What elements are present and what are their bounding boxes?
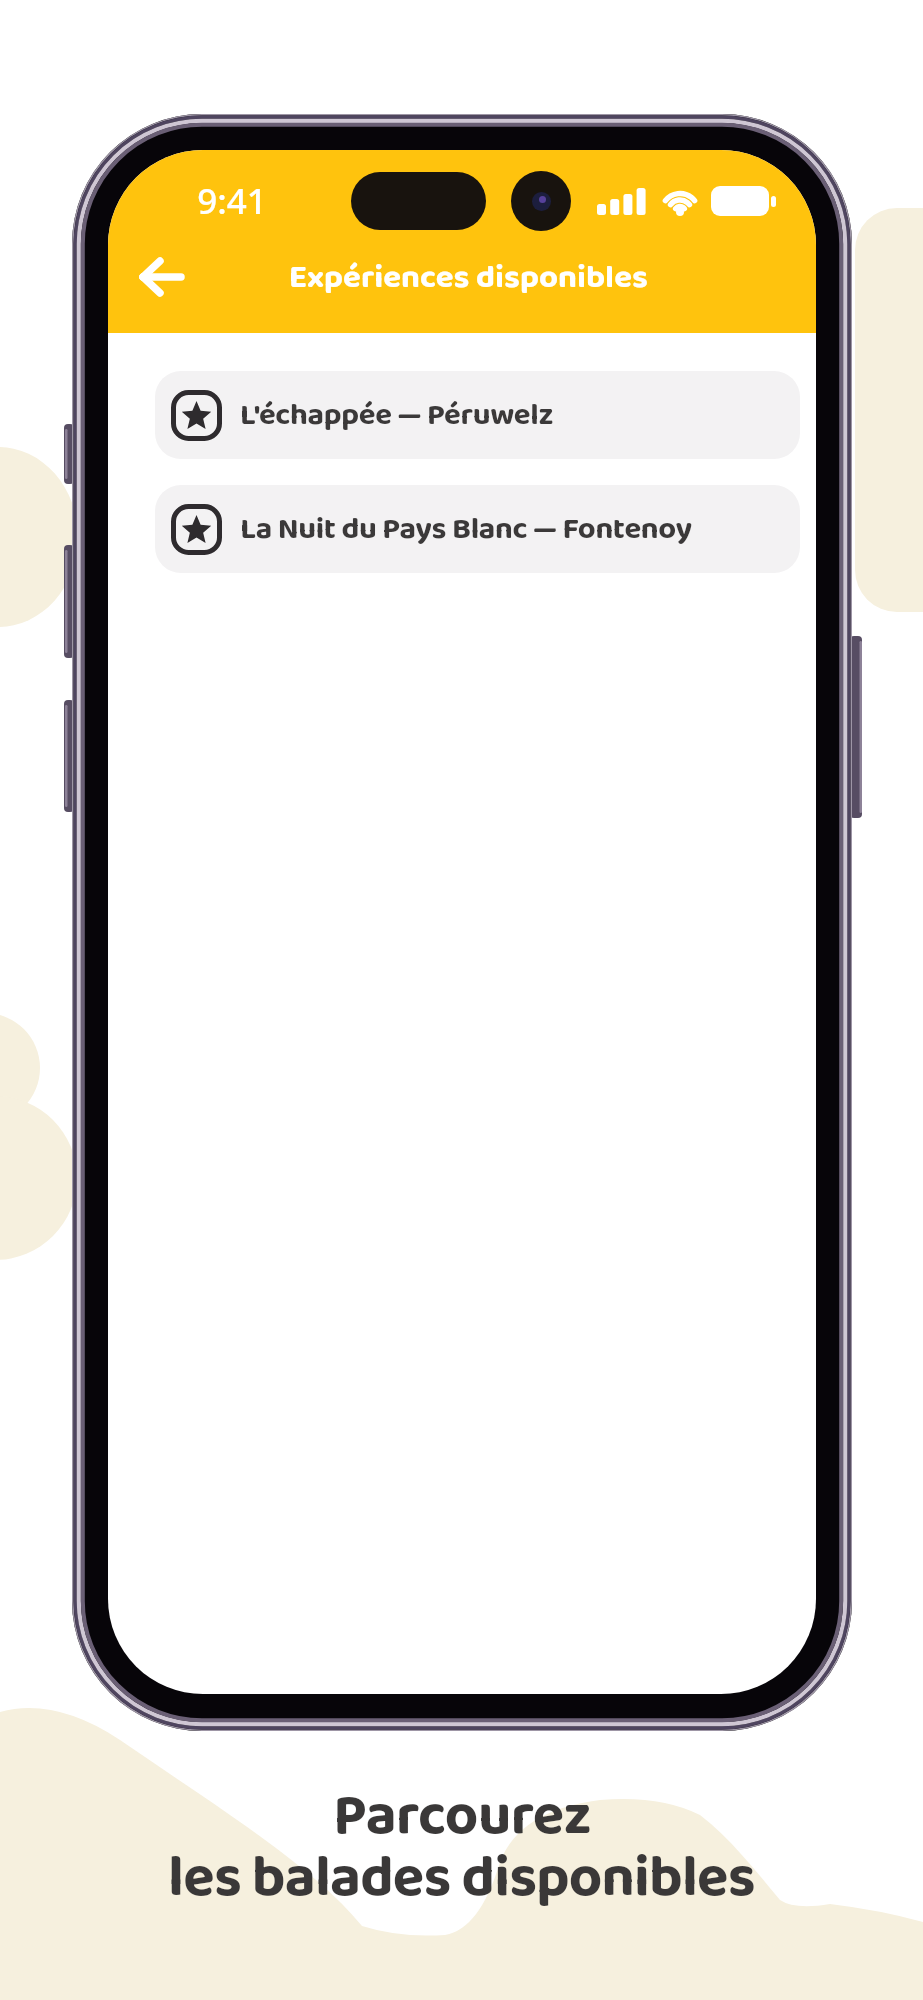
staticText: 9:41	[197, 177, 267, 225]
staticText: les balades disponibles	[168, 1832, 755, 1908]
staticText: Parcourez	[333, 1770, 591, 1846]
staticText: Expériences disponibles	[289, 251, 648, 304]
staticText: L'échappée — Péruwelz	[240, 391, 553, 441]
button[interactable]: L'échappée — Péruwelz	[155, 371, 800, 459]
button[interactable]	[123, 247, 203, 307]
button[interactable]: La Nuit du Pays Blanc — Fontenoy	[155, 485, 800, 573]
staticText: La Nuit du Pays Blanc — Fontenoy	[240, 505, 692, 555]
